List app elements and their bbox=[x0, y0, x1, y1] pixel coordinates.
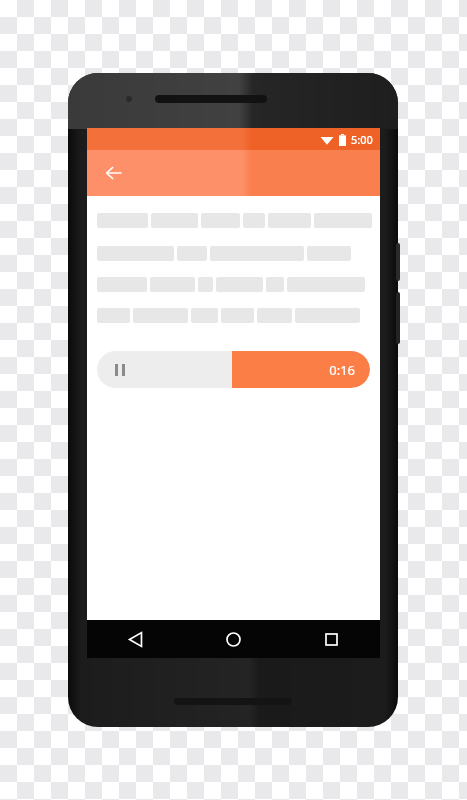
button[interactable]: Back bbox=[96, 155, 132, 191]
button[interactable]: Pause bbox=[109, 359, 131, 381]
button[interactable]: 0:16 bbox=[97, 351, 370, 388]
button[interactable]: Back bbox=[87, 620, 184, 658]
other: Power button bbox=[396, 243, 400, 281]
button[interactable]: Recent apps bbox=[282, 620, 380, 658]
staticText: 5:00 bbox=[351, 132, 373, 147]
staticText: 0:16 bbox=[329, 361, 355, 379]
button[interactable]: Home bbox=[184, 620, 282, 658]
other: Volume button bbox=[396, 292, 400, 344]
